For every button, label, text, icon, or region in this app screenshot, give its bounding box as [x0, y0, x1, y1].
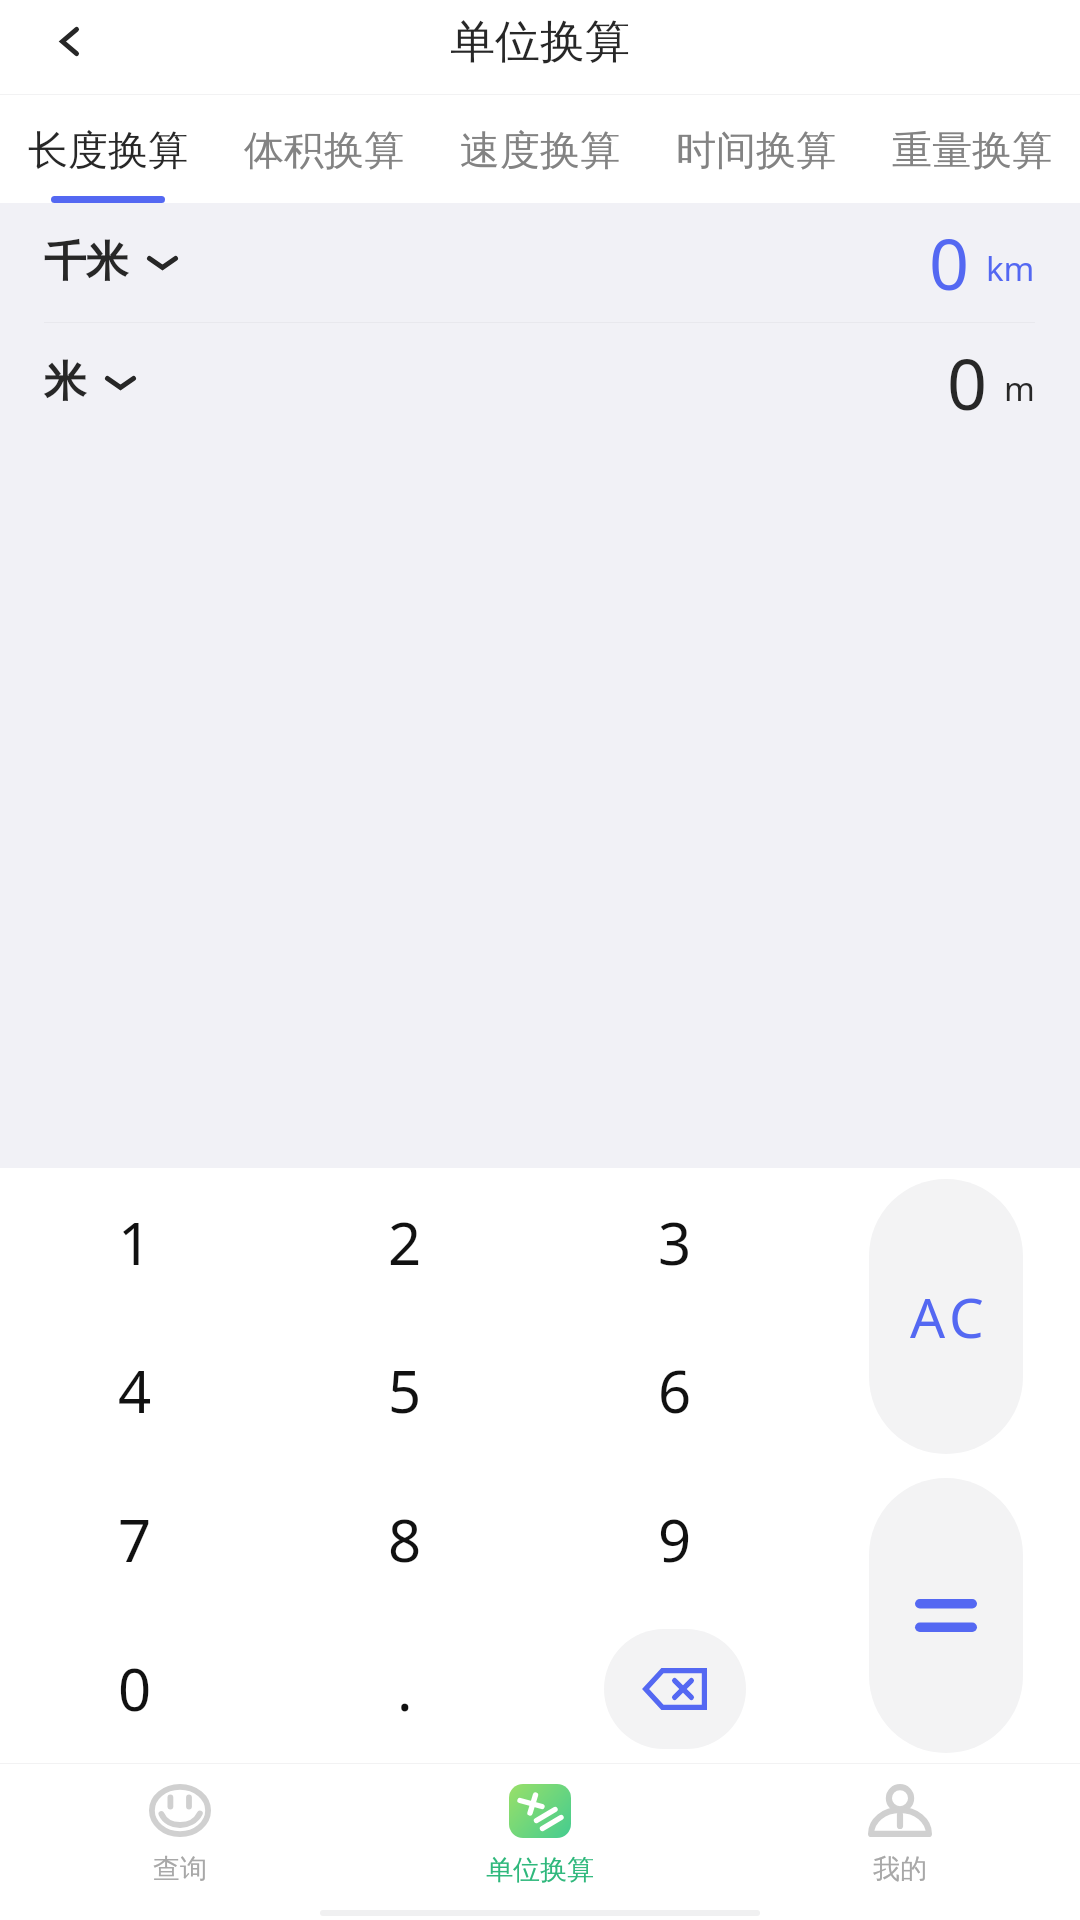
button[interactable]: AC — [869, 1179, 1023, 1454]
staticText: km — [986, 246, 1035, 291]
button[interactable]: 5 — [270, 1316, 540, 1465]
staticText: 8 — [388, 1500, 422, 1579]
staticText: 长度换算 — [28, 125, 188, 175]
staticText: 我的 — [873, 1852, 927, 1886]
staticText: 7 — [118, 1500, 152, 1579]
button[interactable]: 查询 — [0, 1764, 360, 1893]
button[interactable]: 9 — [540, 1465, 810, 1614]
staticText: 重量换算 — [892, 125, 1052, 175]
staticText: 体积换算 — [244, 125, 404, 175]
staticText: 6 — [658, 1351, 692, 1430]
staticText: 5 — [388, 1351, 422, 1430]
staticText: 0 — [929, 215, 970, 310]
button[interactable]: 3 — [540, 1168, 810, 1316]
button[interactable]: 时间换算 — [648, 95, 864, 203]
button[interactable]: Backspace — [540, 1614, 810, 1763]
staticText: AC — [910, 1279, 989, 1354]
staticText: 速度换算 — [460, 125, 620, 175]
button[interactable]: 0 — [0, 1614, 270, 1763]
button[interactable]: 2 — [270, 1168, 540, 1316]
button[interactable]: . — [270, 1614, 540, 1763]
staticText: 千米 — [44, 236, 128, 289]
button[interactable]: 重量换算 — [864, 95, 1080, 203]
staticText: 0 — [118, 1649, 152, 1728]
button[interactable]: 速度换算 — [432, 95, 648, 203]
staticText: 单位换算 — [486, 1853, 594, 1887]
staticText: 9 — [658, 1500, 692, 1579]
staticText: m — [1004, 366, 1035, 411]
button[interactable]: 6 — [540, 1316, 810, 1465]
button[interactable]: 长度换算 — [0, 95, 216, 203]
button[interactable]: 我的 — [720, 1764, 1080, 1893]
staticText: 查询 — [153, 1852, 207, 1886]
staticText: 米 — [44, 356, 86, 409]
staticText: 0 — [947, 335, 988, 430]
button[interactable]: 米 — [0, 323, 1080, 442]
button[interactable]: 8 — [270, 1465, 540, 1614]
staticText: 2 — [388, 1203, 422, 1282]
button[interactable]: Back — [24, 0, 114, 86]
staticText: 1 — [118, 1203, 152, 1282]
staticText: 4 — [118, 1351, 152, 1430]
staticText: . — [397, 1649, 413, 1728]
button[interactable]: Equals — [869, 1478, 1023, 1753]
button[interactable]: 千米 — [0, 203, 1080, 322]
button[interactable]: 体积换算 — [216, 95, 432, 203]
staticText: 时间换算 — [676, 125, 836, 175]
button[interactable]: 单位换算 — [360, 1764, 720, 1893]
button[interactable]: 7 — [0, 1465, 270, 1614]
button[interactable]: 1 — [0, 1168, 270, 1316]
staticText: 单位换算 — [450, 14, 630, 71]
button[interactable]: 4 — [0, 1316, 270, 1465]
staticText: 3 — [658, 1203, 692, 1282]
